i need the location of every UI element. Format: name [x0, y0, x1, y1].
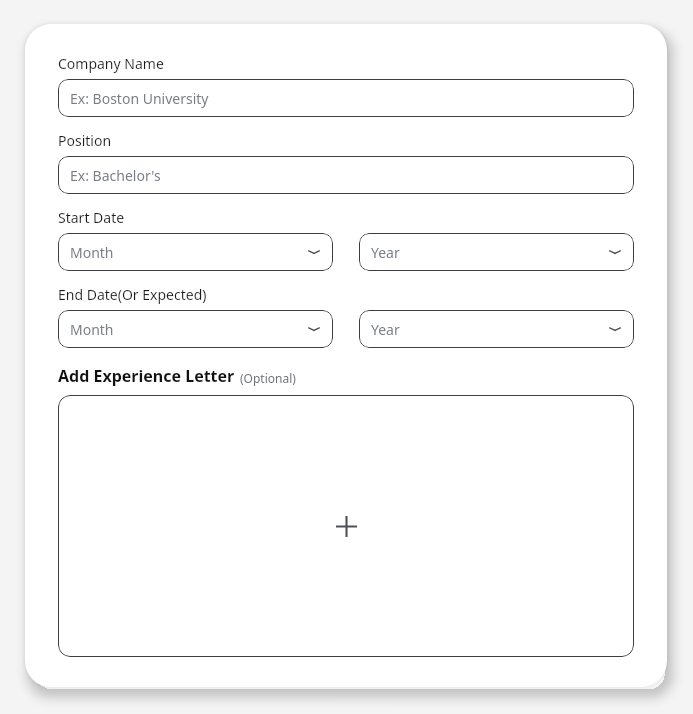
staticText: Month — [70, 320, 307, 339]
button[interactable]: Year — [359, 310, 634, 348]
staticText: Month — [70, 243, 307, 262]
staticText: Company Name — [58, 54, 164, 73]
button[interactable]: Ex: Boston University — [58, 79, 634, 117]
staticText: (Optional) — [240, 370, 296, 386]
button[interactable]: Month — [58, 233, 333, 271]
staticText: End Date(Or Expected) — [58, 285, 207, 304]
button[interactable]: Year — [359, 233, 634, 271]
staticText: Position — [58, 131, 112, 150]
button[interactable]: Add experience letter — [58, 395, 634, 657]
staticText: Add Experience Letter — [58, 365, 235, 387]
button[interactable]: Month — [58, 310, 333, 348]
staticText: Ex: Boston University — [70, 89, 209, 108]
staticText: Year — [371, 243, 608, 262]
staticText: Start Date — [58, 208, 125, 227]
staticText: Ex: Bachelor's — [70, 166, 161, 185]
button[interactable]: Ex: Bachelor's — [58, 156, 634, 194]
staticText: Year — [371, 320, 608, 339]
